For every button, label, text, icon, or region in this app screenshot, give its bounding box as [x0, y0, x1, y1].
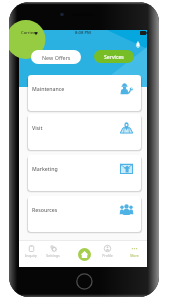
staticText: Services	[104, 53, 124, 60]
button[interactable]: Marketing	[28, 155, 141, 191]
staticText: Visit	[32, 124, 43, 131]
button[interactable]: More	[123, 242, 145, 263]
staticText: Maintenance	[32, 85, 65, 92]
staticText: Inquiry	[25, 253, 37, 258]
button[interactable]: Visit	[28, 114, 141, 150]
button[interactable]: Resources	[28, 196, 141, 232]
button[interactable]: Profile	[96, 242, 118, 263]
button[interactable]: Home	[78, 248, 91, 261]
button[interactable]: Settings	[42, 242, 64, 263]
staticText: Settings	[46, 253, 60, 258]
staticText: Resources	[32, 206, 58, 213]
staticText: More	[130, 253, 139, 258]
staticText: 8:08 PM	[75, 30, 91, 36]
button[interactable]: Inquiry	[20, 242, 42, 263]
button[interactable]: New Offers	[31, 50, 81, 64]
button[interactable]: Notifications	[135, 41, 141, 48]
button[interactable]: Maintenance	[28, 75, 141, 111]
staticText: Carrier	[21, 30, 35, 36]
staticText: Profile	[102, 253, 113, 258]
staticText: New Offers	[42, 54, 71, 61]
staticText: Marketing	[32, 165, 58, 172]
button[interactable]: Services	[94, 50, 134, 63]
